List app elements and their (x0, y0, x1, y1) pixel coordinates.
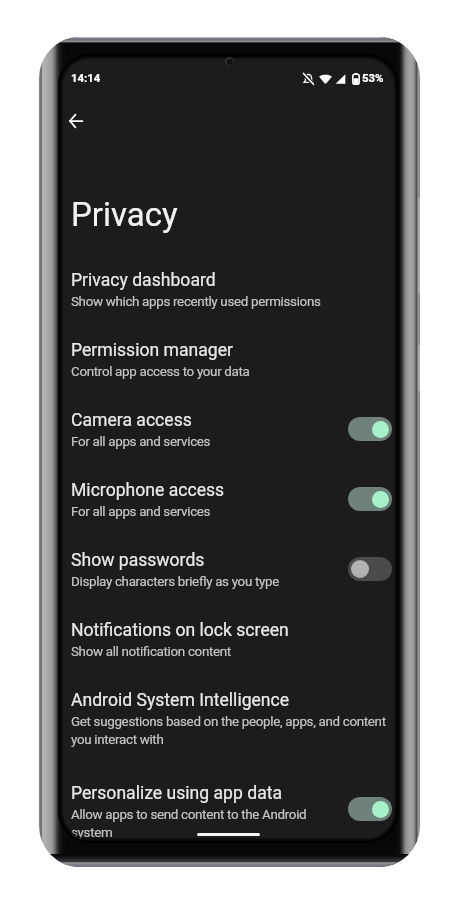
staticText: Notifications on lock screen (71, 620, 289, 641)
button[interactable]: Toggle (348, 417, 392, 441)
button[interactable]: Toggle (348, 487, 392, 511)
button[interactable] (58, 530, 399, 600)
button[interactable] (58, 250, 399, 320)
staticText: 53% (362, 71, 384, 84)
button[interactable] (58, 670, 399, 758)
button[interactable] (58, 389, 399, 459)
staticText: Privacy dashboard (71, 270, 216, 291)
button[interactable]: Toggle (348, 557, 392, 581)
staticText: Permission manager (71, 340, 233, 361)
staticText: Show which apps recently used permission… (71, 294, 393, 310)
button[interactable]: Back (58, 101, 96, 141)
staticText: Microphone access (71, 480, 225, 501)
staticText: For all apps and services (71, 504, 347, 520)
button[interactable] (58, 320, 399, 390)
staticText: Personalize using app data (71, 783, 283, 804)
staticText: Privacy (71, 195, 178, 234)
staticText: 14:14 (71, 71, 101, 84)
button[interactable]: Toggle (348, 797, 392, 821)
staticText: Get suggestions based on the people, app… (71, 714, 393, 747)
staticText: Show all notification content (71, 644, 393, 660)
button[interactable] (58, 763, 399, 843)
staticText: For all apps and services (71, 434, 347, 450)
staticText: Display characters briefly as you type (71, 574, 347, 590)
staticText: Allow apps to send content to the Androi… (71, 807, 347, 840)
staticText: Camera access (71, 410, 192, 431)
staticText: Show passwords (71, 550, 205, 571)
button[interactable] (58, 459, 399, 529)
staticText: Android System Intelligence (71, 690, 290, 711)
button[interactable] (58, 600, 399, 670)
staticText: Control app access to your data (71, 364, 393, 380)
